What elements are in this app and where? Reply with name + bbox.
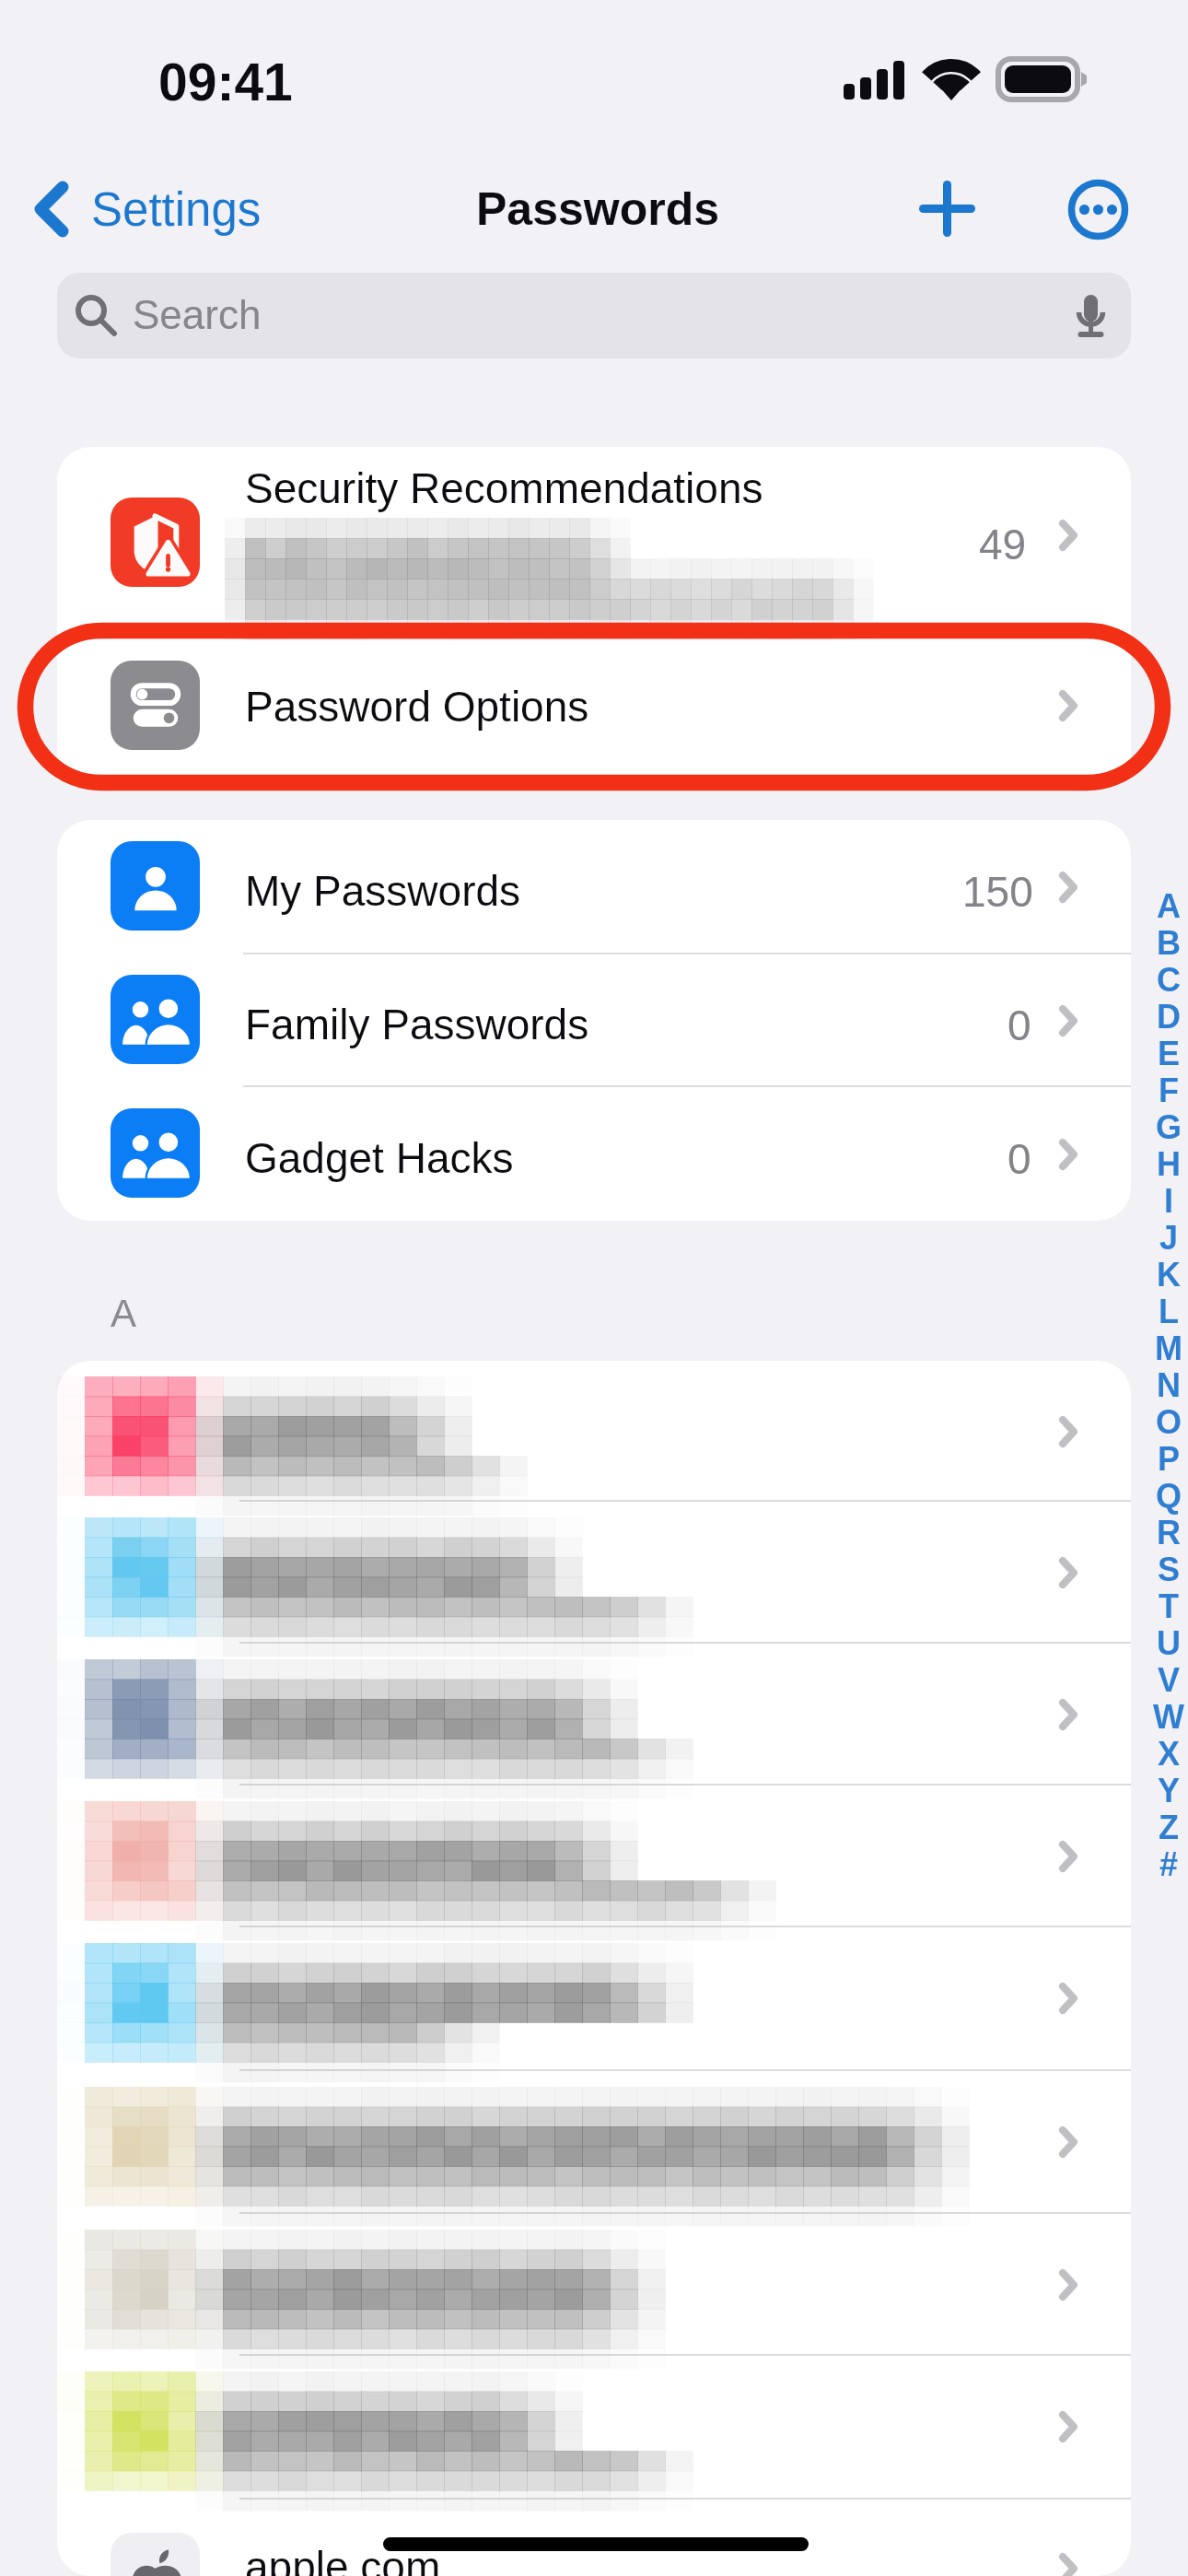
staticText: N bbox=[1157, 1366, 1181, 1403]
button[interactable]: Search bbox=[57, 273, 1131, 358]
staticText: Security Recommendations bbox=[245, 464, 763, 511]
staticText: V bbox=[1158, 1661, 1181, 1698]
staticText: Y bbox=[1158, 1772, 1181, 1809]
staticText: W bbox=[1153, 1698, 1184, 1735]
button[interactable] bbox=[57, 1927, 1131, 2067]
staticText: K bbox=[1157, 1256, 1181, 1293]
staticText: Password Options bbox=[245, 683, 589, 730]
staticText: 09:41 bbox=[158, 53, 293, 111]
button[interactable]: Add password bbox=[899, 160, 996, 257]
staticText: U bbox=[1157, 1624, 1181, 1661]
staticText: 150 bbox=[962, 868, 1033, 915]
staticText: H bbox=[1157, 1145, 1181, 1182]
button[interactable] bbox=[57, 954, 1131, 1087]
staticText: R bbox=[1157, 1514, 1181, 1551]
staticText: Gadget Hacks bbox=[245, 1134, 514, 1181]
staticText: apple.com bbox=[245, 2543, 441, 2576]
staticText: A bbox=[1157, 887, 1181, 924]
staticText: G bbox=[1156, 1108, 1182, 1145]
staticText: L bbox=[1159, 1293, 1179, 1329]
staticText: 0 bbox=[1007, 1135, 1031, 1182]
staticText: O bbox=[1156, 1403, 1182, 1440]
staticText: Family Passwords bbox=[245, 1001, 589, 1048]
staticText: E bbox=[1158, 1035, 1181, 1071]
staticText: My Passwords bbox=[245, 867, 521, 914]
staticText: Settings bbox=[91, 183, 262, 236]
staticText: F bbox=[1159, 1071, 1179, 1108]
staticText: J bbox=[1159, 1219, 1179, 1256]
staticText: C bbox=[1157, 961, 1181, 998]
button[interactable] bbox=[57, 1502, 1131, 1642]
staticText: # bbox=[1159, 1845, 1179, 1882]
staticText: 49 bbox=[979, 521, 1027, 568]
staticText: T bbox=[1159, 1587, 1179, 1624]
staticText: Q bbox=[1156, 1477, 1182, 1514]
button[interactable] bbox=[57, 1786, 1131, 1926]
staticText: D bbox=[1157, 998, 1181, 1035]
button[interactable] bbox=[57, 2071, 1131, 2211]
button[interactable] bbox=[57, 1087, 1131, 1221]
button[interactable] bbox=[57, 1361, 1131, 1501]
button[interactable] bbox=[57, 2498, 1131, 2576]
button[interactable] bbox=[57, 622, 1131, 788]
staticText: S bbox=[1158, 1551, 1181, 1587]
staticText: I bbox=[1164, 1182, 1174, 1219]
button[interactable] bbox=[57, 447, 1131, 622]
staticText: M bbox=[1155, 1329, 1182, 1366]
staticText: Passwords bbox=[476, 183, 720, 235]
staticText: Search bbox=[133, 292, 262, 337]
staticText: Z bbox=[1159, 1809, 1179, 1845]
staticText: B bbox=[1157, 924, 1181, 961]
staticText: A bbox=[111, 1292, 137, 1335]
button[interactable] bbox=[57, 2356, 1131, 2496]
button[interactable] bbox=[57, 2214, 1131, 2354]
button[interactable]: More options bbox=[1050, 161, 1147, 258]
button[interactable] bbox=[57, 1644, 1131, 1784]
staticText: 0 bbox=[1007, 1001, 1031, 1048]
staticText: P bbox=[1158, 1440, 1181, 1477]
staticText: X bbox=[1158, 1735, 1181, 1772]
button[interactable] bbox=[57, 820, 1131, 954]
button[interactable]: Settings bbox=[24, 168, 262, 251]
